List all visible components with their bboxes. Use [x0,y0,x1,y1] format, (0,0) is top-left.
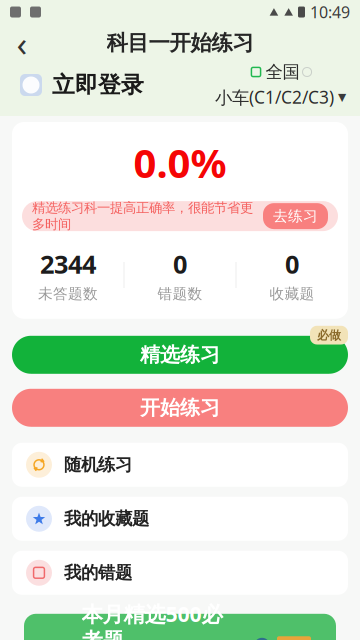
staticText: 10:49 [310,1,350,23]
staticText: ▼ [338,91,346,103]
staticText: 全国 [265,61,299,83]
staticText: 小车(C1/C2/C3) [215,86,334,109]
staticText: 未答题数 [38,285,98,303]
button[interactable]: 本月精选500必考题 [12,611,348,640]
staticText: 我的收藏题 [64,508,149,529]
button[interactable]: Back [0,25,44,61]
staticText: 必做 [317,328,341,342]
button[interactable]: 立即登录 [48,71,144,99]
staticText: 0 [173,247,187,281]
staticText: 本月精选500必考题 [81,599,222,640]
staticText: 立即登录 [52,71,144,99]
staticText: 精选练习科一提高正确率，很能节省更多时间 [32,200,253,232]
staticText: 错题数 [157,285,202,303]
staticText: ‹ [16,20,27,66]
button[interactable]: 小车(C1/C2/C3) [215,86,346,109]
staticText: 随机练习 [64,454,132,475]
button[interactable]: 全国 [249,61,312,83]
staticText: 开始练习 [140,395,220,420]
staticText: 0 [285,247,299,281]
button[interactable]: 开始练习 [12,389,348,427]
staticText: 0.0% [133,136,226,189]
staticText: 科目一开始练习 [106,30,253,56]
button[interactable]: Avatar [14,68,48,102]
button[interactable]: 我的收藏题 [12,497,348,541]
button[interactable]: 我的错题 [12,551,348,595]
staticText: 收藏题 [269,285,314,303]
staticText: 我的错题 [64,562,132,583]
staticText: 精选练习 [140,342,220,367]
button[interactable]: 随机练习 [12,443,348,487]
staticText: 去练习 [273,207,318,225]
staticText: 2344 [40,247,96,281]
button[interactable]: 精选练习 [12,336,348,374]
button[interactable]: 去练习 [263,203,328,229]
